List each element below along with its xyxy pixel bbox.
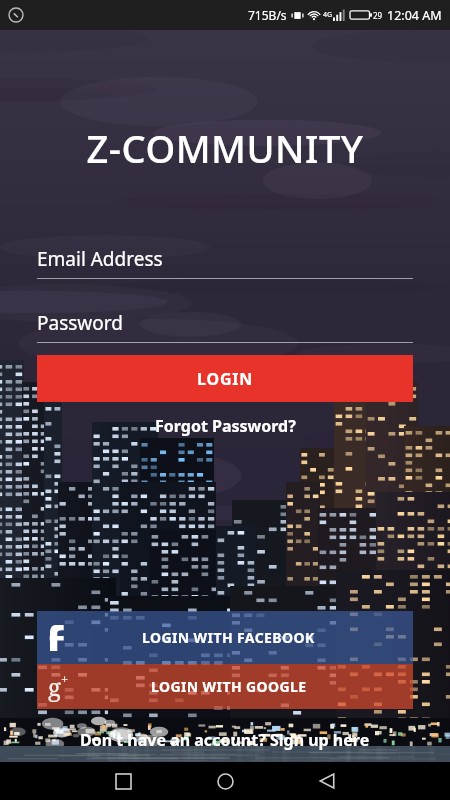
button[interactable]: Don't have an account? Sign up here — [0, 727, 450, 753]
staticText: Z-COMMUNITY — [0, 122, 450, 174]
staticText: 29 — [373, 10, 383, 21]
staticText: Password — [37, 310, 123, 336]
staticText: Email Address — [37, 246, 163, 272]
staticText: 12:04 AM — [387, 7, 442, 24]
staticText: g — [48, 670, 61, 703]
button[interactable]: Recent apps — [106, 764, 140, 798]
button[interactable]: Back — [310, 764, 344, 798]
staticText: + — [61, 670, 69, 688]
staticText: LOGIN WITH GOOGLE — [151, 677, 307, 696]
button[interactable]: g — [37, 664, 413, 709]
staticText: Don't have an account? Sign up here — [80, 729, 370, 751]
staticText: 715B/s — [248, 7, 287, 23]
staticText: 4G — [323, 10, 333, 20]
button[interactable]: Email Address — [37, 246, 413, 279]
button[interactable]: Forgot Password? — [0, 412, 450, 440]
button[interactable]: LOGIN — [37, 355, 413, 402]
button[interactable]: Password — [37, 310, 413, 343]
button[interactable]: Home — [208, 764, 242, 798]
staticText: Forgot Password? — [155, 415, 296, 437]
staticText: LOGIN — [197, 368, 254, 390]
staticText: LOGIN WITH FACEBOOK — [142, 628, 315, 647]
button[interactable]: LOGIN WITH FACEBOOK — [37, 611, 413, 664]
